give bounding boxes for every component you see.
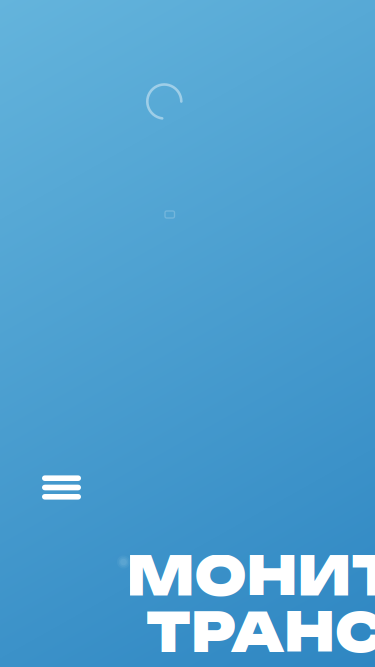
staticText: ТРАНСПОРТА xyxy=(146,599,375,665)
staticText: МОНИТОРИНГ xyxy=(126,542,375,609)
button[interactable]: Menu xyxy=(42,475,81,500)
